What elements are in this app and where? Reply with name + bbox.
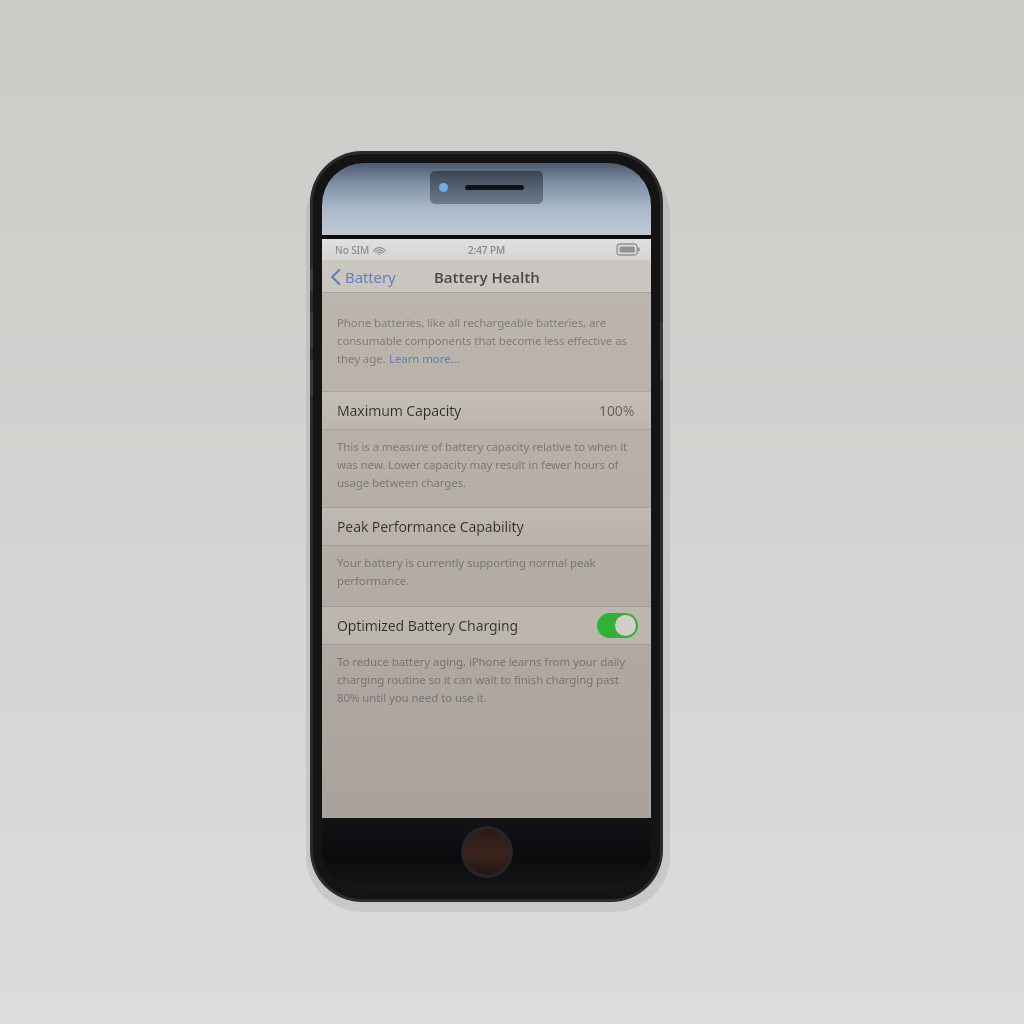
staticText: 80% until you need to use it. <box>337 690 487 706</box>
staticText: usage between charges. <box>337 475 467 491</box>
button[interactable]: Battery <box>322 262 404 292</box>
button[interactable]: Home <box>461 826 513 878</box>
staticText: Battery <box>345 267 396 287</box>
staticText: Your battery is currently supporting nor… <box>337 555 596 571</box>
button[interactable]: Peak Performance Capability <box>322 508 651 545</box>
staticText: Phone batteries, like all rechargeable b… <box>337 315 607 331</box>
staticText: Peak Performance Capability <box>337 517 524 536</box>
staticText: To reduce battery aging, iPhone learns f… <box>337 654 625 670</box>
button[interactable]: Optimized Battery Charging <box>322 607 651 644</box>
staticText: Maximum Capacity <box>337 401 462 420</box>
staticText: charging routine so it can wait to finis… <box>337 672 619 688</box>
staticText: No SIM <box>335 243 370 257</box>
button[interactable]: Learn more... <box>389 351 460 367</box>
staticText: Learn more... <box>389 351 460 367</box>
staticText: Optimized Battery Charging <box>337 616 519 635</box>
staticText: 100% <box>599 401 635 420</box>
staticText: 2:47 PM <box>468 243 506 257</box>
button[interactable]: Maximum Capacity <box>322 392 651 429</box>
staticText: This is a measure of battery capacity re… <box>337 439 628 455</box>
staticText: consumable components that become less e… <box>337 333 627 349</box>
staticText: Battery Health <box>434 267 540 287</box>
staticText: they age. <box>337 351 386 367</box>
button[interactable]: Optimized Battery Charging toggle, on <box>597 613 638 638</box>
staticText: was new. Lower capacity may result in fe… <box>337 457 619 473</box>
staticText: performance. <box>337 573 410 589</box>
